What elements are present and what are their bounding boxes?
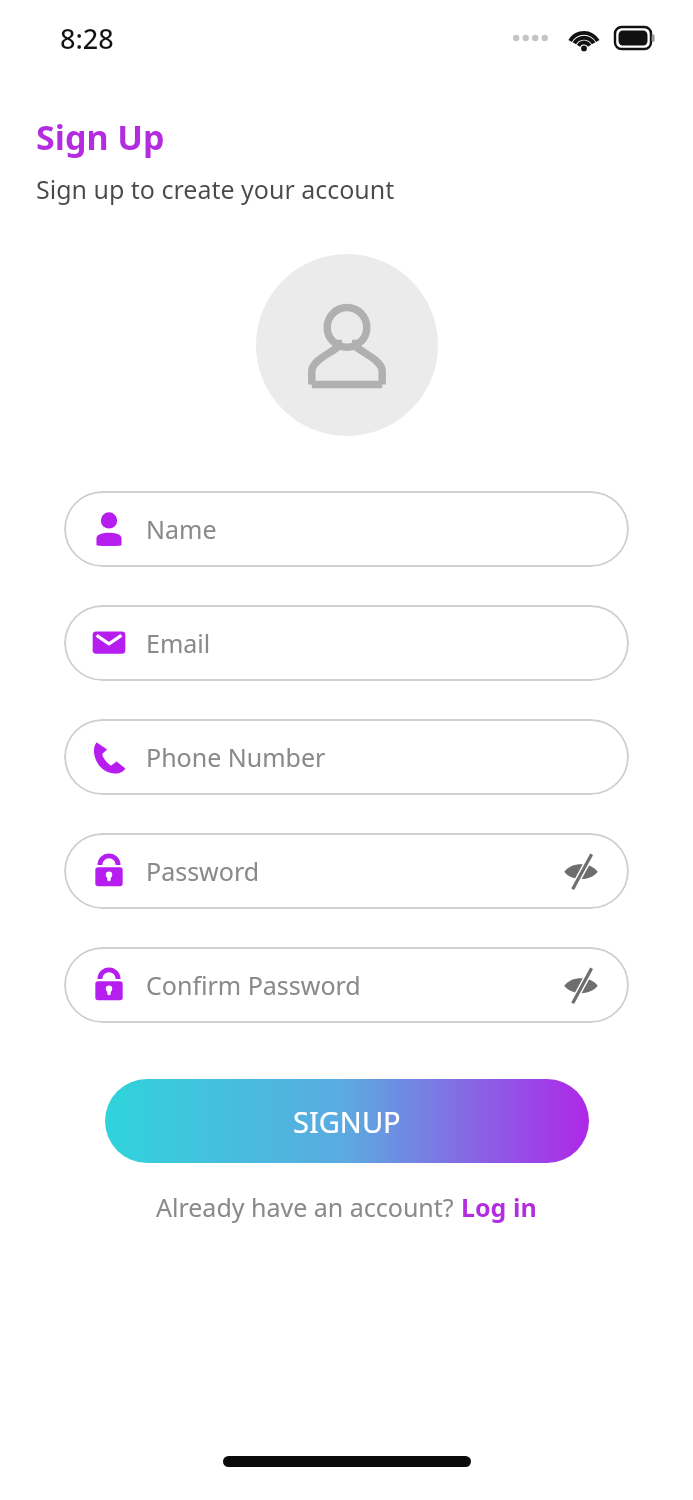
button[interactable]: Show password <box>559 963 603 1007</box>
button[interactable]: Email <box>64 605 629 681</box>
button[interactable]: SIGNUP <box>105 1079 589 1163</box>
button[interactable]: Add profile photo <box>256 254 438 436</box>
button[interactable]: Name <box>64 491 629 567</box>
staticText: Sign Up <box>36 114 165 160</box>
staticText: Sign up to create your account <box>36 172 395 206</box>
staticText: Email <box>146 626 211 660</box>
button[interactable]: Phone Number <box>64 719 629 795</box>
staticText: 8:28 <box>60 20 114 57</box>
staticText: Phone Number <box>146 740 326 774</box>
staticText: Password <box>146 854 260 888</box>
staticText: Confirm Password <box>146 968 361 1002</box>
button[interactable]: Password <box>64 833 629 909</box>
button[interactable]: Already have an account? <box>156 1190 537 1224</box>
staticText: SIGNUP <box>293 1102 401 1141</box>
staticText: Name <box>146 512 217 546</box>
button[interactable]: Confirm Password <box>64 947 629 1023</box>
staticText: Already have an account? <box>156 1190 461 1224</box>
button[interactable]: Show password <box>559 849 603 893</box>
staticText: Log in <box>461 1190 537 1224</box>
